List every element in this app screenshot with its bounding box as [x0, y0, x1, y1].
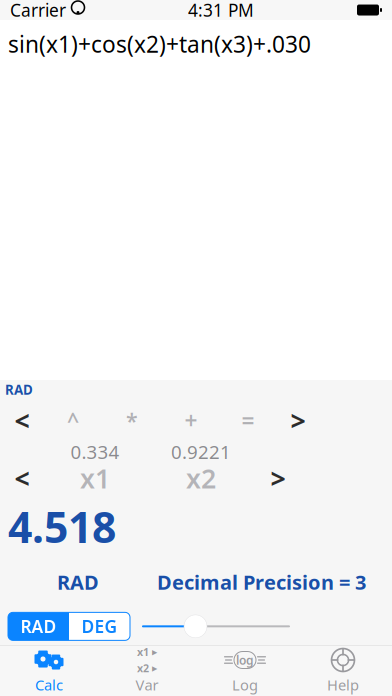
- staticText: x1: [137, 645, 149, 659]
- button[interactable]: *: [102, 407, 162, 433]
- staticText: RAD: [20, 615, 56, 638]
- staticText: Var: [135, 675, 158, 694]
- staticText: log: [236, 652, 254, 668]
- button[interactable]: <: [0, 407, 44, 433]
- staticText: *: [126, 406, 138, 434]
- staticText: ▸: [152, 662, 157, 674]
- staticText: x2: [186, 460, 216, 496]
- staticText: >: [290, 403, 305, 438]
- staticText: <: [14, 403, 29, 438]
- staticText: Calc: [35, 675, 63, 694]
- button[interactable]: +: [162, 407, 220, 433]
- button[interactable]: x1: [44, 464, 146, 492]
- staticText: 0.334: [70, 439, 119, 464]
- staticText: Carrier: [10, 0, 66, 21]
- staticText: Help: [327, 675, 359, 694]
- staticText: =: [241, 405, 254, 435]
- staticText: Decimal Precision = 3: [157, 569, 366, 595]
- button[interactable]: x2: [146, 464, 256, 492]
- staticText: 4:31 PM: [188, 0, 254, 21]
- staticText: ▸: [152, 646, 157, 658]
- staticText: RAD: [57, 569, 99, 595]
- staticText: <: [14, 460, 29, 496]
- button[interactable]: >: [256, 464, 300, 492]
- button[interactable]: =: [220, 407, 276, 433]
- button[interactable]: Help: [294, 646, 392, 696]
- staticText: x2: [137, 661, 149, 675]
- staticText: 4.518: [8, 498, 116, 555]
- button[interactable]: <: [0, 464, 44, 492]
- button[interactable]: Calc: [0, 646, 98, 696]
- button[interactable]: x1: [98, 646, 196, 696]
- staticText: sin(x1)+cos(x2)+tan(x3)+.030: [8, 29, 311, 59]
- staticText: ^: [67, 406, 79, 434]
- button[interactable]: RAD: [8, 612, 69, 640]
- button[interactable]: DEG: [69, 612, 130, 640]
- button[interactable]: >: [276, 407, 320, 433]
- button[interactable]: log: [196, 646, 294, 696]
- staticText: Log: [232, 675, 258, 694]
- staticText: x1: [80, 460, 110, 496]
- staticText: >: [270, 460, 285, 496]
- staticText: +: [184, 405, 197, 435]
- staticText: DEG: [81, 615, 117, 638]
- staticText: RAD: [5, 381, 33, 398]
- button[interactable]: ^: [44, 407, 102, 433]
- staticText: 0.9221: [171, 439, 231, 464]
